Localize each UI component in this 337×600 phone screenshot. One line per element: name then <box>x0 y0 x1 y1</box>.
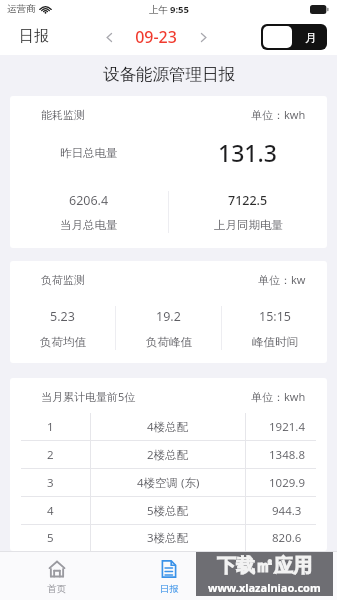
staticText: 19.2 <box>156 308 181 325</box>
staticText: 1029.9 <box>269 475 305 491</box>
staticText: 4楼空调 (东) <box>137 475 200 491</box>
staticText: 日报 <box>160 583 179 595</box>
staticText: 峰值时间 <box>252 335 298 349</box>
staticText: 1 <box>47 419 54 435</box>
staticText: 运营商 <box>7 3 36 15</box>
staticText: 首页 <box>47 583 66 595</box>
staticText: 1921.4 <box>269 419 305 435</box>
button[interactable]: 上一天 <box>98 26 120 48</box>
staticText: 上午 <box>149 4 168 16</box>
staticText: 7122.5 <box>228 192 268 209</box>
staticText: 5楼总配 <box>147 503 189 519</box>
staticText: 月 <box>305 30 317 45</box>
staticText: 当月总电量 <box>60 218 118 232</box>
staticText: 4 <box>47 503 54 519</box>
staticText: 单位： <box>258 273 291 287</box>
staticText: 单位： <box>251 108 284 122</box>
staticText: 负荷监测 <box>41 273 85 287</box>
staticText: 下载㎡应用 <box>217 554 312 578</box>
staticText: 昨日总电量 <box>60 146 118 160</box>
staticText: 131.3 <box>218 137 277 168</box>
staticText: 2 <box>47 447 54 463</box>
button[interactable]: 首页 <box>0 552 113 600</box>
staticText: 负荷均值 <box>40 335 86 349</box>
staticText: kwh <box>284 389 306 404</box>
staticText: 单位： <box>251 390 284 404</box>
button[interactable]: 日报 <box>113 552 225 600</box>
staticText: 9:55 <box>170 3 189 16</box>
staticText: 2楼总配 <box>147 447 189 463</box>
staticText: 09-23 <box>128 26 184 48</box>
staticText: 6206.4 <box>69 192 109 209</box>
staticText: www.xlazalniao.com <box>208 580 321 595</box>
staticText: 15:15 <box>259 308 291 325</box>
button[interactable] <box>225 552 337 600</box>
staticText: 设备能源管理日报 <box>103 64 235 85</box>
staticText: 上月同期电量 <box>214 218 283 232</box>
staticText: 1348.8 <box>269 447 305 463</box>
staticText: 当月累计电量前5位 <box>41 389 136 404</box>
staticText: kw <box>291 272 306 287</box>
staticText: kwh <box>284 107 306 122</box>
staticText: 负荷峰值 <box>146 335 192 349</box>
staticText: 4楼总配 <box>147 419 189 435</box>
staticText: 5.23 <box>50 308 75 325</box>
staticText: 820.6 <box>272 530 302 546</box>
staticText: 3楼总配 <box>147 530 189 546</box>
staticText: 5 <box>47 530 54 546</box>
button[interactable]: 日 <box>261 24 327 50</box>
button[interactable]: 下一天 <box>192 26 214 48</box>
staticText: 3 <box>47 475 54 491</box>
staticText: 能耗监测 <box>41 108 85 122</box>
staticText: 944.3 <box>272 503 302 519</box>
staticText: 日报 <box>19 27 49 46</box>
